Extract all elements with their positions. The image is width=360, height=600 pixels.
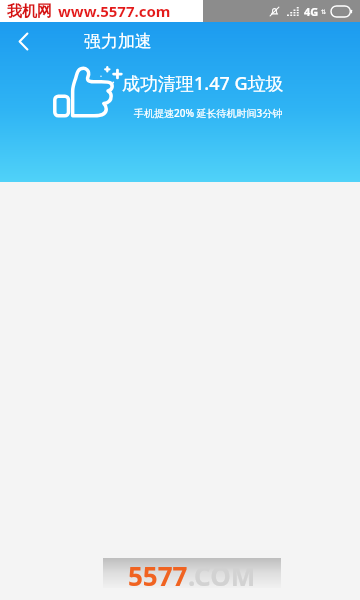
staticText: 强力加速 (84, 31, 152, 52)
staticText: 4G (304, 4, 319, 19)
staticText: 5577 (128, 558, 188, 588)
staticText: ⇅ (321, 8, 327, 15)
staticText: 成功清理1.47 G垃圾 (122, 71, 284, 96)
staticText: 手机提速20% 延长待机时间3分钟 (134, 106, 283, 120)
staticText: 我机网 (7, 2, 52, 21)
button[interactable]: Back (0, 22, 46, 60)
staticText: .COM (188, 558, 256, 588)
staticText: www.5577.com (58, 1, 171, 21)
